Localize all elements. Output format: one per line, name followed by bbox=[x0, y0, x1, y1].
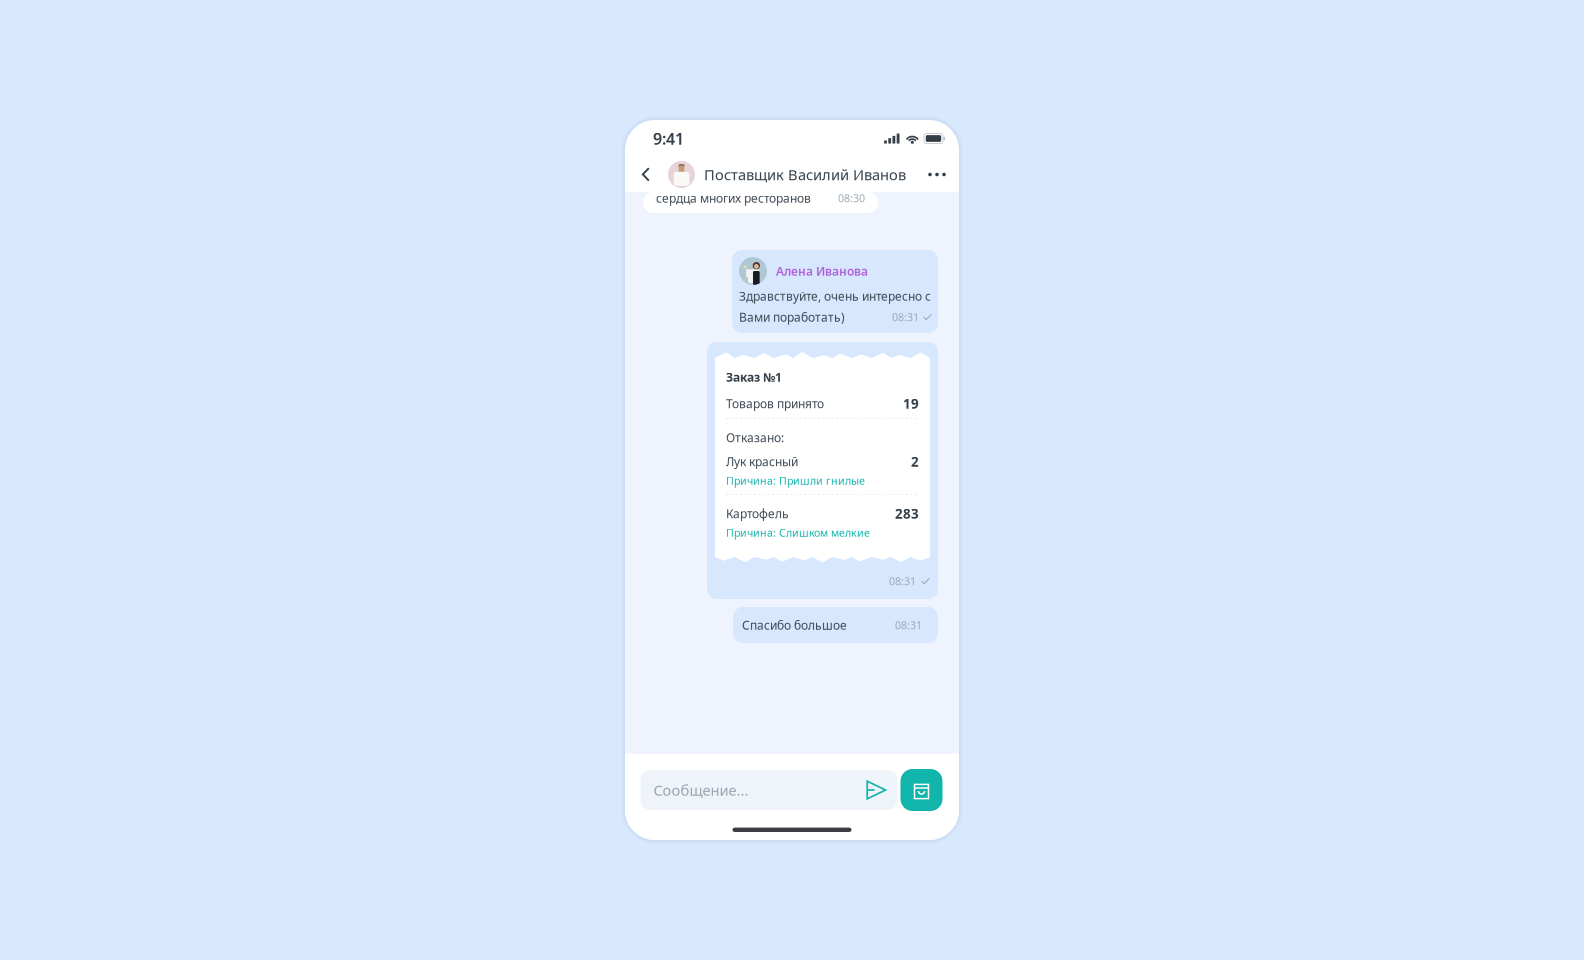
staticText: 08:31 bbox=[895, 618, 922, 632]
staticText: Причина: Слишком мелкие bbox=[726, 525, 870, 540]
button[interactable]: More options bbox=[928, 157, 946, 192]
staticText: 283 bbox=[895, 505, 919, 522]
staticText: 19 bbox=[903, 395, 919, 412]
staticText: Заказ №1 bbox=[726, 369, 782, 385]
staticText: Вами поработать) bbox=[739, 309, 845, 325]
staticText: 08:31 bbox=[889, 574, 916, 588]
staticText: Картофель bbox=[726, 505, 789, 521]
staticText: Сообщение... bbox=[653, 780, 748, 800]
staticText: 9:41 bbox=[653, 128, 684, 149]
staticText: Лук красный bbox=[726, 453, 798, 469]
staticText: Отказано: bbox=[726, 429, 784, 445]
staticText: Причина: Пришли гнилые bbox=[726, 473, 865, 488]
button[interactable]: Back bbox=[639, 157, 653, 192]
button[interactable]: Send bbox=[859, 770, 893, 810]
staticText: 2 bbox=[911, 453, 919, 470]
staticText: 08:31 bbox=[892, 310, 919, 324]
staticText: Спасибо большое bbox=[742, 617, 847, 633]
button[interactable]: Create order bbox=[900, 769, 942, 811]
staticText: 08:30 bbox=[838, 191, 865, 205]
staticText: Здравствуйте, очень интересно с bbox=[739, 288, 931, 304]
staticText: Товаров принято bbox=[726, 395, 824, 411]
staticText: Поставщик Василий Иванов bbox=[704, 165, 906, 184]
staticText: Алена Иванова bbox=[776, 263, 868, 279]
staticText: сердца многих ресторанов bbox=[656, 190, 811, 206]
